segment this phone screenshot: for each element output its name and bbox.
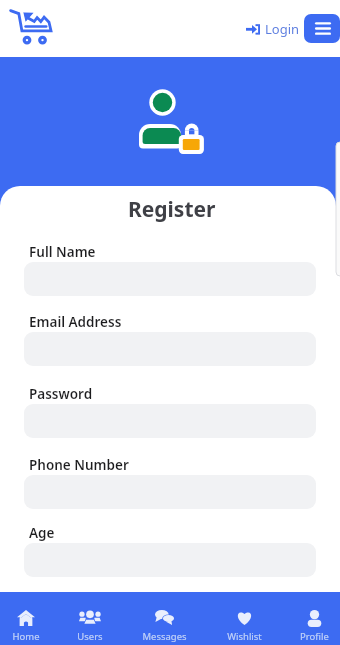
button[interactable]: Wishlist [214, 592, 274, 645]
staticText: Login [265, 20, 300, 38]
staticText: Full Name [29, 243, 96, 261]
button[interactable]: Home logo [0, 0, 56, 52]
staticText: Age [29, 524, 55, 542]
staticText: Password [29, 385, 93, 403]
button[interactable]: Home [0, 592, 56, 645]
button[interactable]: Login [244, 13, 302, 45]
button[interactable]: Menu [304, 14, 340, 43]
button[interactable]: Profile [284, 592, 340, 645]
staticText: Home [12, 630, 40, 643]
staticText: Users [77, 630, 103, 643]
button[interactable]: Messages [134, 592, 194, 645]
staticText: Register [128, 195, 216, 223]
staticText: Email Address [29, 313, 122, 331]
staticText: Messages [142, 630, 187, 643]
button[interactable]: Users [60, 592, 120, 645]
staticText: Profile [300, 630, 329, 643]
staticText: Wishlist [227, 630, 262, 643]
staticText: Phone Number [29, 456, 129, 474]
